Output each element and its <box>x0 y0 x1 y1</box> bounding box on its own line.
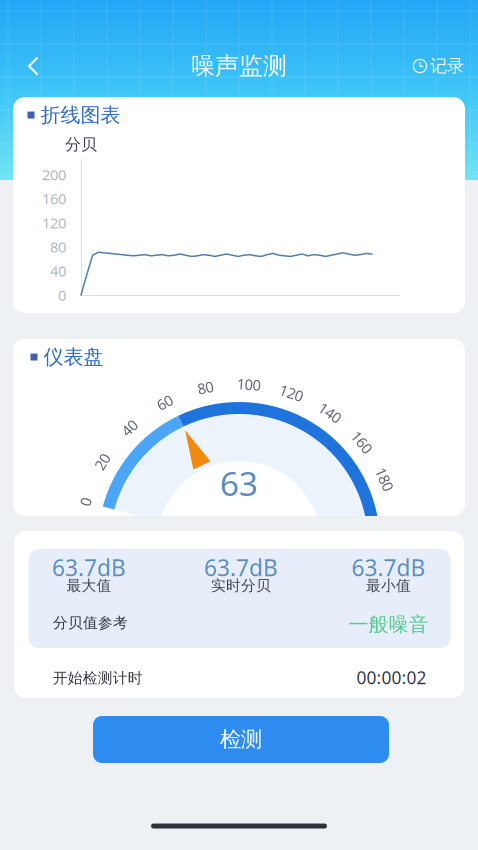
staticText: 80 <box>197 378 213 397</box>
staticText: 开始检测计时 <box>53 669 143 687</box>
staticText: 120 <box>279 383 303 403</box>
staticText: 仪表盘 <box>43 345 103 369</box>
staticText: 120 <box>42 213 66 232</box>
staticText: 20 <box>94 452 110 472</box>
button[interactable]: 检测 <box>93 716 389 763</box>
staticText: 160 <box>350 432 374 452</box>
button[interactable]: Back <box>10 44 58 88</box>
staticText: 实时分贝 <box>211 576 271 594</box>
staticText: 63.7dB <box>52 552 126 582</box>
staticText: 180 <box>373 469 397 489</box>
staticText: 0 <box>81 492 89 512</box>
staticText: 200 <box>42 165 66 184</box>
staticText: 60 <box>157 393 173 412</box>
staticText: 分贝 <box>65 135 97 154</box>
staticText: 分贝值参考 <box>53 614 128 632</box>
staticText: 63.7dB <box>351 552 425 582</box>
staticText: 40 <box>121 418 137 438</box>
staticText: 最大值 <box>66 576 111 594</box>
button[interactable]: 记录 <box>406 44 470 88</box>
staticText: 140 <box>318 403 342 422</box>
staticText: 00:00:02 <box>356 666 426 689</box>
staticText: 40 <box>50 261 66 281</box>
staticText: 折线图表 <box>40 103 120 127</box>
staticText: 100 <box>237 375 261 394</box>
staticText: 160 <box>42 189 66 208</box>
staticText: 一般噪音 <box>348 612 428 637</box>
staticText: 0 <box>58 285 66 305</box>
staticText: 记录 <box>430 55 464 77</box>
staticText: 63 <box>220 461 258 505</box>
staticText: 63.7dB <box>204 552 278 582</box>
staticText: 最小值 <box>366 576 411 594</box>
staticText: 噪声监测 <box>191 51 287 81</box>
staticText: 检测 <box>220 726 262 753</box>
staticText: 80 <box>50 237 66 257</box>
